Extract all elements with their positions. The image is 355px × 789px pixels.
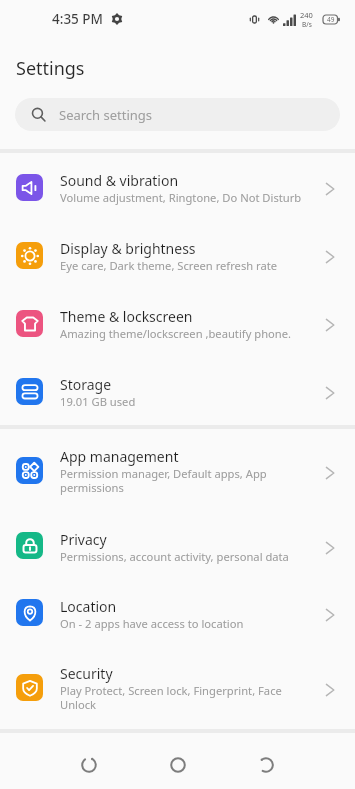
- staticText: Sound & vibration: [60, 171, 179, 190]
- staticText: 240: [300, 10, 313, 20]
- button[interactable]: Privacy: [0, 512, 355, 579]
- staticText: Permissions, account activity, personal …: [60, 549, 289, 564]
- button[interactable]: App management: [0, 429, 355, 512]
- staticText: Amazing theme/lockscreen ,beautify phone…: [60, 326, 292, 341]
- button[interactable]: Location: [0, 579, 355, 646]
- staticText: Storage: [60, 375, 112, 394]
- staticText: Location: [60, 597, 117, 616]
- staticText: Play Protect, Screen lock, Fingerprint, …: [60, 683, 313, 713]
- staticText: Display & brightness: [60, 239, 196, 258]
- staticText: Settings: [16, 56, 85, 81]
- staticText: App management: [60, 447, 179, 466]
- staticText: On - 2 apps have access to location: [60, 616, 244, 631]
- button[interactable]: Search settings: [15, 98, 340, 131]
- staticText: 49: [327, 15, 335, 24]
- staticText: B/s: [302, 20, 312, 29]
- staticText: Theme & lockscreen: [60, 307, 193, 326]
- staticText: 4:35 PM: [52, 10, 103, 28]
- staticText: Search settings: [59, 106, 153, 124]
- button[interactable]: Theme & lockscreen: [0, 289, 355, 357]
- staticText: Privacy: [60, 530, 107, 549]
- staticText: Volume adjustment, Ringtone, Do Not Dist…: [60, 190, 302, 205]
- staticText: 19.01 GB used: [60, 394, 136, 409]
- staticText: Security: [60, 664, 113, 683]
- staticText: Permission manager, Default apps, App pe…: [60, 466, 313, 496]
- button[interactable]: Security: [0, 646, 355, 729]
- button[interactable]: Sound & vibration: [0, 153, 355, 221]
- button[interactable]: Display & brightness: [0, 221, 355, 289]
- staticText: Eye care, Dark theme, Screen refresh rat…: [60, 258, 278, 273]
- button[interactable]: Home: [158, 745, 198, 785]
- button[interactable]: Storage: [0, 357, 355, 425]
- button[interactable]: Back: [246, 745, 286, 785]
- button[interactable]: Recents: [69, 745, 109, 785]
